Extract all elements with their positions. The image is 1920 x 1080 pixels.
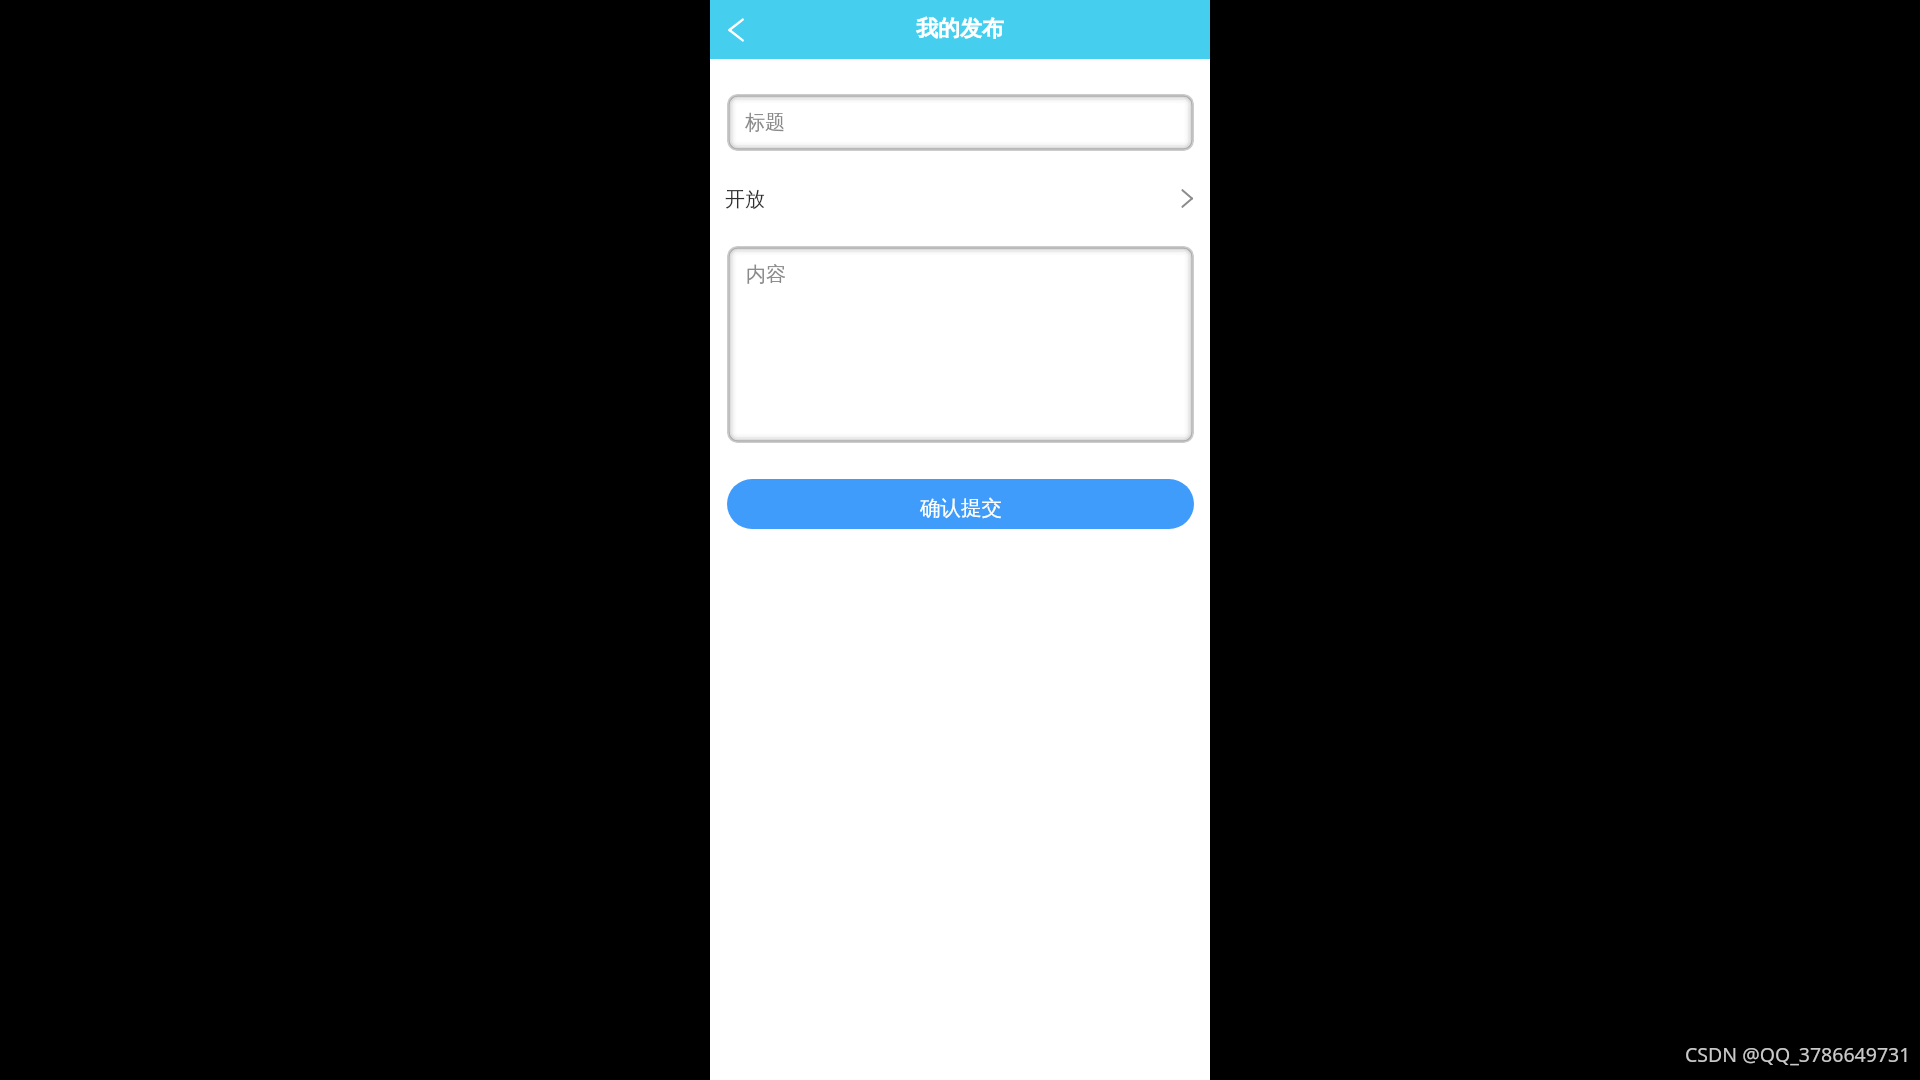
staticText: 标题 — [745, 110, 785, 135]
staticText: 我的发布 — [916, 15, 1004, 43]
button[interactable]: 确认提交 — [727, 479, 1194, 529]
staticText: 开放 — [725, 187, 765, 212]
button[interactable]: 标题 — [727, 94, 1194, 151]
button[interactable]: 开放 — [710, 151, 1210, 246]
staticText: 内容 — [746, 262, 786, 287]
button[interactable]: Back — [714, 9, 756, 51]
staticText: 确认提交 — [920, 495, 1002, 521]
button[interactable]: 内容 — [727, 246, 1194, 443]
staticText: CSDN @QQ_3786649731 — [1685, 1041, 1911, 1068]
